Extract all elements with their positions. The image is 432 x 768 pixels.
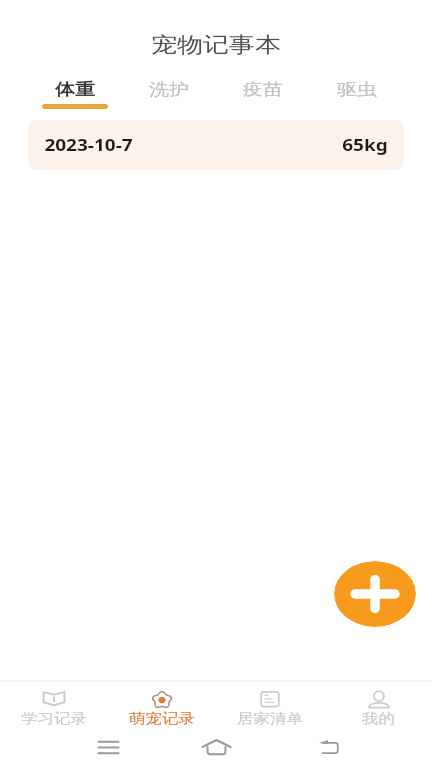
staticText: 65kg xyxy=(342,134,388,156)
button[interactable]: 洗护 xyxy=(122,75,216,111)
staticText: 疫苗 xyxy=(243,79,283,100)
button[interactable]: 居家清单 xyxy=(216,682,324,733)
staticText: 我的 xyxy=(362,710,395,727)
button[interactable]: 体重 xyxy=(28,75,122,111)
staticText: 居家清单 xyxy=(237,710,303,727)
button[interactable]: 我的 xyxy=(324,682,432,733)
staticText: 萌宠记录 xyxy=(129,710,195,727)
button[interactable]: 萌宠记录 xyxy=(108,682,216,733)
staticText: 洗护 xyxy=(149,79,189,100)
staticText: 驱虫 xyxy=(337,79,377,100)
button[interactable]: 驱虫 xyxy=(310,75,404,111)
button[interactable]: 学习记录 xyxy=(0,682,108,733)
button[interactable]: 疫苗 xyxy=(216,75,310,111)
button[interactable]: 2023-10-7 xyxy=(28,120,404,170)
staticText: 宠物记事本 xyxy=(151,32,281,59)
staticText: 2023-10-7 xyxy=(44,134,133,156)
button[interactable]: Add record xyxy=(334,561,416,627)
staticText: 体重 xyxy=(55,79,95,100)
staticText: 学习记录 xyxy=(21,710,87,727)
